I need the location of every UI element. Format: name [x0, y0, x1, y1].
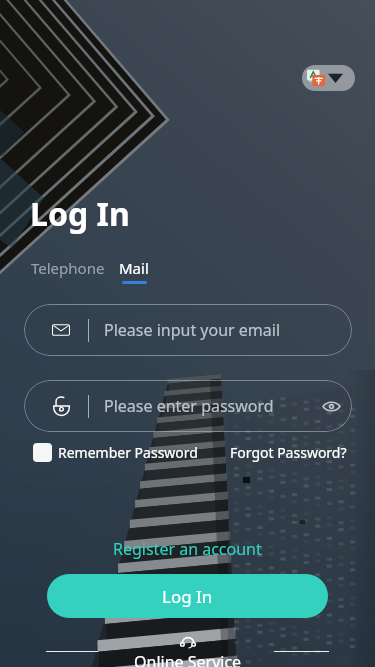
- staticText: Please input your email: [104, 319, 281, 341]
- staticText: Telephone: [31, 258, 105, 278]
- button[interactable]: Change language: [302, 65, 355, 91]
- button[interactable]: Remember Password: [33, 443, 198, 462]
- button[interactable]: Please input your email: [24, 304, 352, 356]
- staticText: Log In: [162, 585, 213, 608]
- staticText: Register an account: [113, 538, 262, 560]
- staticText: Mail: [119, 258, 149, 278]
- button[interactable]: Online Service: [134, 637, 242, 667]
- button[interactable]: Show password: [322, 400, 341, 413]
- button[interactable]: Log In: [47, 574, 328, 618]
- button[interactable]: Please enter password: [24, 380, 352, 432]
- staticText: Log In: [30, 192, 130, 236]
- staticText: Forgot Password?: [230, 443, 347, 462]
- button[interactable]: Forgot Password?: [230, 443, 347, 462]
- button[interactable]: Telephone: [31, 258, 105, 278]
- staticText: Please enter password: [104, 395, 274, 417]
- button[interactable]: Mail: [119, 258, 149, 284]
- staticText: Online Service: [134, 651, 242, 667]
- staticText: Remember Password: [58, 443, 198, 462]
- button[interactable]: Register an account: [113, 538, 262, 560]
